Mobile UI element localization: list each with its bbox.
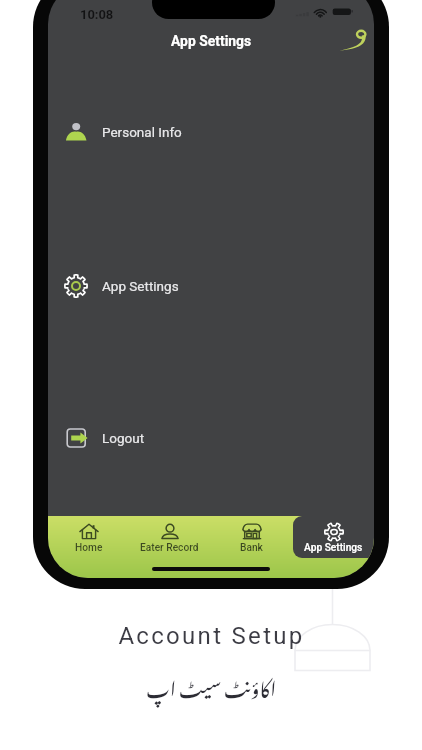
staticText: App Settings <box>171 33 252 49</box>
button[interactable]: Profile <box>332 23 374 59</box>
button[interactable]: App Settings <box>141 30 281 52</box>
staticText: Eater Record <box>140 542 199 554</box>
button[interactable]: Bank <box>210 516 292 558</box>
button[interactable]: Eater Record <box>129 516 210 558</box>
staticText: App Settings <box>102 278 179 294</box>
button[interactable]: Personal Info <box>48 114 374 150</box>
staticText: Bank <box>240 542 263 554</box>
button[interactable]: App Settings <box>292 516 374 558</box>
button[interactable]: App Settings <box>48 268 374 304</box>
button[interactable]: Logout <box>48 420 374 456</box>
staticText: Personal Info <box>102 124 182 140</box>
staticText: Logout <box>102 430 145 446</box>
staticText: Home <box>75 542 103 554</box>
staticText: اکاؤنٹ سیٹ اپ <box>146 660 277 710</box>
staticText: App Settings <box>304 542 363 554</box>
staticText: Account Setup <box>118 622 305 650</box>
staticText: 10:08 <box>80 7 114 22</box>
button[interactable]: Home <box>48 516 129 558</box>
